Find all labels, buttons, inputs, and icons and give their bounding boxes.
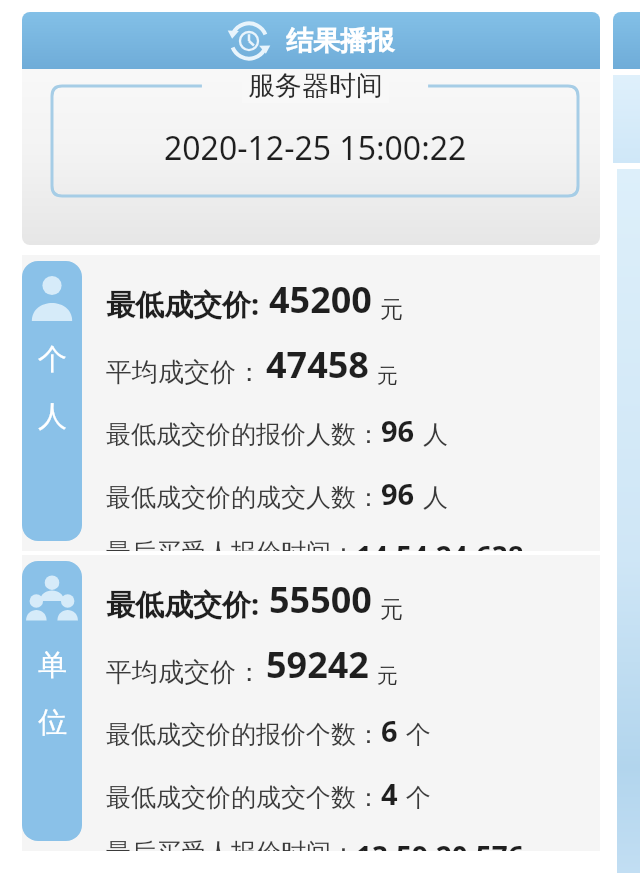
staticText: 55500 <box>269 575 372 624</box>
staticText: 最低成交价: <box>106 584 260 624</box>
staticText: 2020-12-25 15:00:22 <box>164 126 467 170</box>
staticText: 个 <box>406 782 431 813</box>
staticText: 结果播报 <box>286 24 394 58</box>
staticText: 47458 <box>266 340 369 389</box>
button[interactable]: 单 <box>22 561 82 841</box>
other: 刷新 <box>228 20 270 62</box>
staticText: 最低成交价的报价人数： <box>106 419 381 450</box>
staticText: 96 <box>381 474 415 513</box>
staticText: 6 <box>381 711 398 750</box>
staticText: 元 <box>380 295 403 324</box>
staticText: 45200 <box>269 275 372 324</box>
staticText: 最低成交价的成交人数： <box>106 482 381 513</box>
staticText: 位 <box>38 704 67 741</box>
staticText: 最低成交价: <box>106 284 260 324</box>
staticText: 单 <box>38 647 67 684</box>
staticText: 元 <box>380 595 403 624</box>
staticText: 最低成交价的成交个数： <box>106 782 381 813</box>
button[interactable]: 个 <box>22 261 82 541</box>
staticText: 个 <box>38 341 67 378</box>
staticText: 平均成交价： <box>106 356 262 389</box>
staticText: 13:59:20.576 <box>356 837 524 851</box>
staticText: 个 <box>406 719 431 750</box>
staticText: 59242 <box>266 640 369 689</box>
staticText: 人 <box>423 419 448 450</box>
staticText: 最后买受人报价时间： <box>106 837 356 851</box>
staticText: 96 <box>381 411 415 450</box>
staticText: 最后买受人报价时间： <box>106 537 356 551</box>
staticText: 人 <box>423 482 448 513</box>
staticText: 元 <box>377 663 398 689</box>
staticText: 平均成交价： <box>106 656 262 689</box>
staticText: 元 <box>377 363 398 389</box>
staticText: 4 <box>381 774 398 813</box>
button[interactable]: 刷新 <box>22 12 600 69</box>
staticText: 最低成交价的报价个数： <box>106 719 381 750</box>
staticText: 服务器时间 <box>248 69 383 103</box>
staticText: 人 <box>38 398 67 435</box>
staticText: 14:54:24.638 <box>356 537 524 551</box>
